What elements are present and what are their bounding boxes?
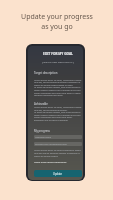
staticText: EDIT FOR MY GOAL bbox=[34, 52, 82, 56]
staticText: Target description bbox=[34, 71, 82, 75]
button[interactable]: Describe your achievement here bbox=[34, 142, 82, 146]
staticText: Ut enim ad minim veniam, quis nostrud ex… bbox=[34, 86, 82, 89]
staticText: My progress bbox=[34, 129, 82, 133]
staticText: cing elit, sed do eiusmod tempor incidid… bbox=[34, 81, 82, 84]
staticText: tation ullamco laboris nisi ut aliquip e… bbox=[34, 114, 82, 117]
staticText: cing elit, sed do eiusmod tempor. bbox=[34, 109, 82, 112]
staticText: labore et dolore magna. bbox=[34, 155, 82, 158]
staticText: Achievable bbox=[34, 102, 82, 106]
staticText: tation ullamco laboris nisi ut aliquip e… bbox=[34, 89, 82, 92]
staticText: modo consequat duis aute irure dolor in … bbox=[34, 92, 82, 95]
staticText: Learn more about milestones bbox=[34, 161, 82, 164]
staticText: henderit voluptate velit esse. bbox=[34, 94, 82, 97]
staticText: Describe your achievement here bbox=[35, 143, 67, 146]
staticText: labore et dolore magna aliqua ut enim. bbox=[34, 84, 82, 87]
staticText: Milestone name bbox=[35, 136, 51, 139]
staticText: Excepteur sint occaecat cupidatat. bbox=[34, 119, 82, 122]
staticText: Lorem ipsum dolor sit amet, consectetur … bbox=[34, 106, 82, 109]
staticText: Update your progress as you go bbox=[21, 12, 93, 32]
button[interactable]: Update bbox=[34, 170, 82, 177]
staticText: Ut enim ad minim veniam, quis nostrud ex… bbox=[34, 111, 82, 114]
staticText: Update bbox=[53, 172, 63, 176]
staticText: [ Build a new habit and PC ] bbox=[34, 60, 82, 63]
staticText: Lorem ipsum dolor sit amet consectetur a… bbox=[34, 149, 82, 152]
staticText: cing elit sed do eiusmod tempor incididu… bbox=[34, 152, 82, 155]
staticText: Lorem ipsum dolor sit amet, consectetur … bbox=[34, 79, 82, 82]
staticText: modo consequat duis aute irure dolor. bbox=[34, 116, 82, 119]
button[interactable]: Milestone name bbox=[34, 135, 82, 139]
